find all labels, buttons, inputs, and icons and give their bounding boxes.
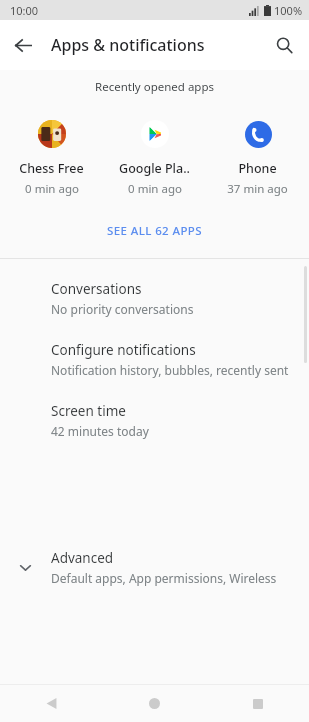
staticText: Advanced <box>51 549 114 567</box>
staticText: Conversations <box>51 280 142 298</box>
button[interactable]: SEE ALL 62 APPS <box>0 219 309 243</box>
button[interactable]: Phone <box>206 117 309 199</box>
staticText: 0 min ago <box>128 181 182 197</box>
staticText: 100% <box>274 3 303 18</box>
button[interactable]: Search <box>265 26 303 64</box>
staticText: Apps & notifications <box>51 34 205 56</box>
staticText: Chess Free <box>19 160 84 177</box>
staticText: Screen time <box>51 402 126 420</box>
button[interactable]: Chess Free <box>0 117 103 199</box>
button[interactable]: Conversations <box>0 268 309 329</box>
staticText: Recently opened apps <box>0 79 309 95</box>
staticText: 42 minutes today <box>51 423 149 439</box>
staticText: 37 min ago <box>227 181 288 197</box>
button[interactable]: Screen time <box>0 390 309 451</box>
staticText: Notification history, bubbles, recently … <box>51 362 289 378</box>
button[interactable]: Back <box>0 685 103 722</box>
staticText: 0 min ago <box>25 181 79 197</box>
staticText: 10:00 <box>10 3 39 18</box>
staticText: Google Pla.. <box>119 160 190 177</box>
button[interactable]: Home <box>103 685 206 722</box>
staticText: No priority conversations <box>51 301 194 317</box>
button[interactable]: Advanced <box>0 451 309 684</box>
button[interactable]: Configure notifications <box>0 329 309 390</box>
staticText: SEE ALL 62 APPS <box>107 223 202 239</box>
button[interactable]: Google Pla.. <box>103 117 206 199</box>
staticText: Default apps, App permissions, Wireless … <box>51 570 297 586</box>
staticText: Phone <box>238 160 277 177</box>
button[interactable]: Recent apps <box>206 685 309 722</box>
staticText: Configure notifications <box>51 341 196 359</box>
button[interactable]: Back <box>4 26 42 64</box>
